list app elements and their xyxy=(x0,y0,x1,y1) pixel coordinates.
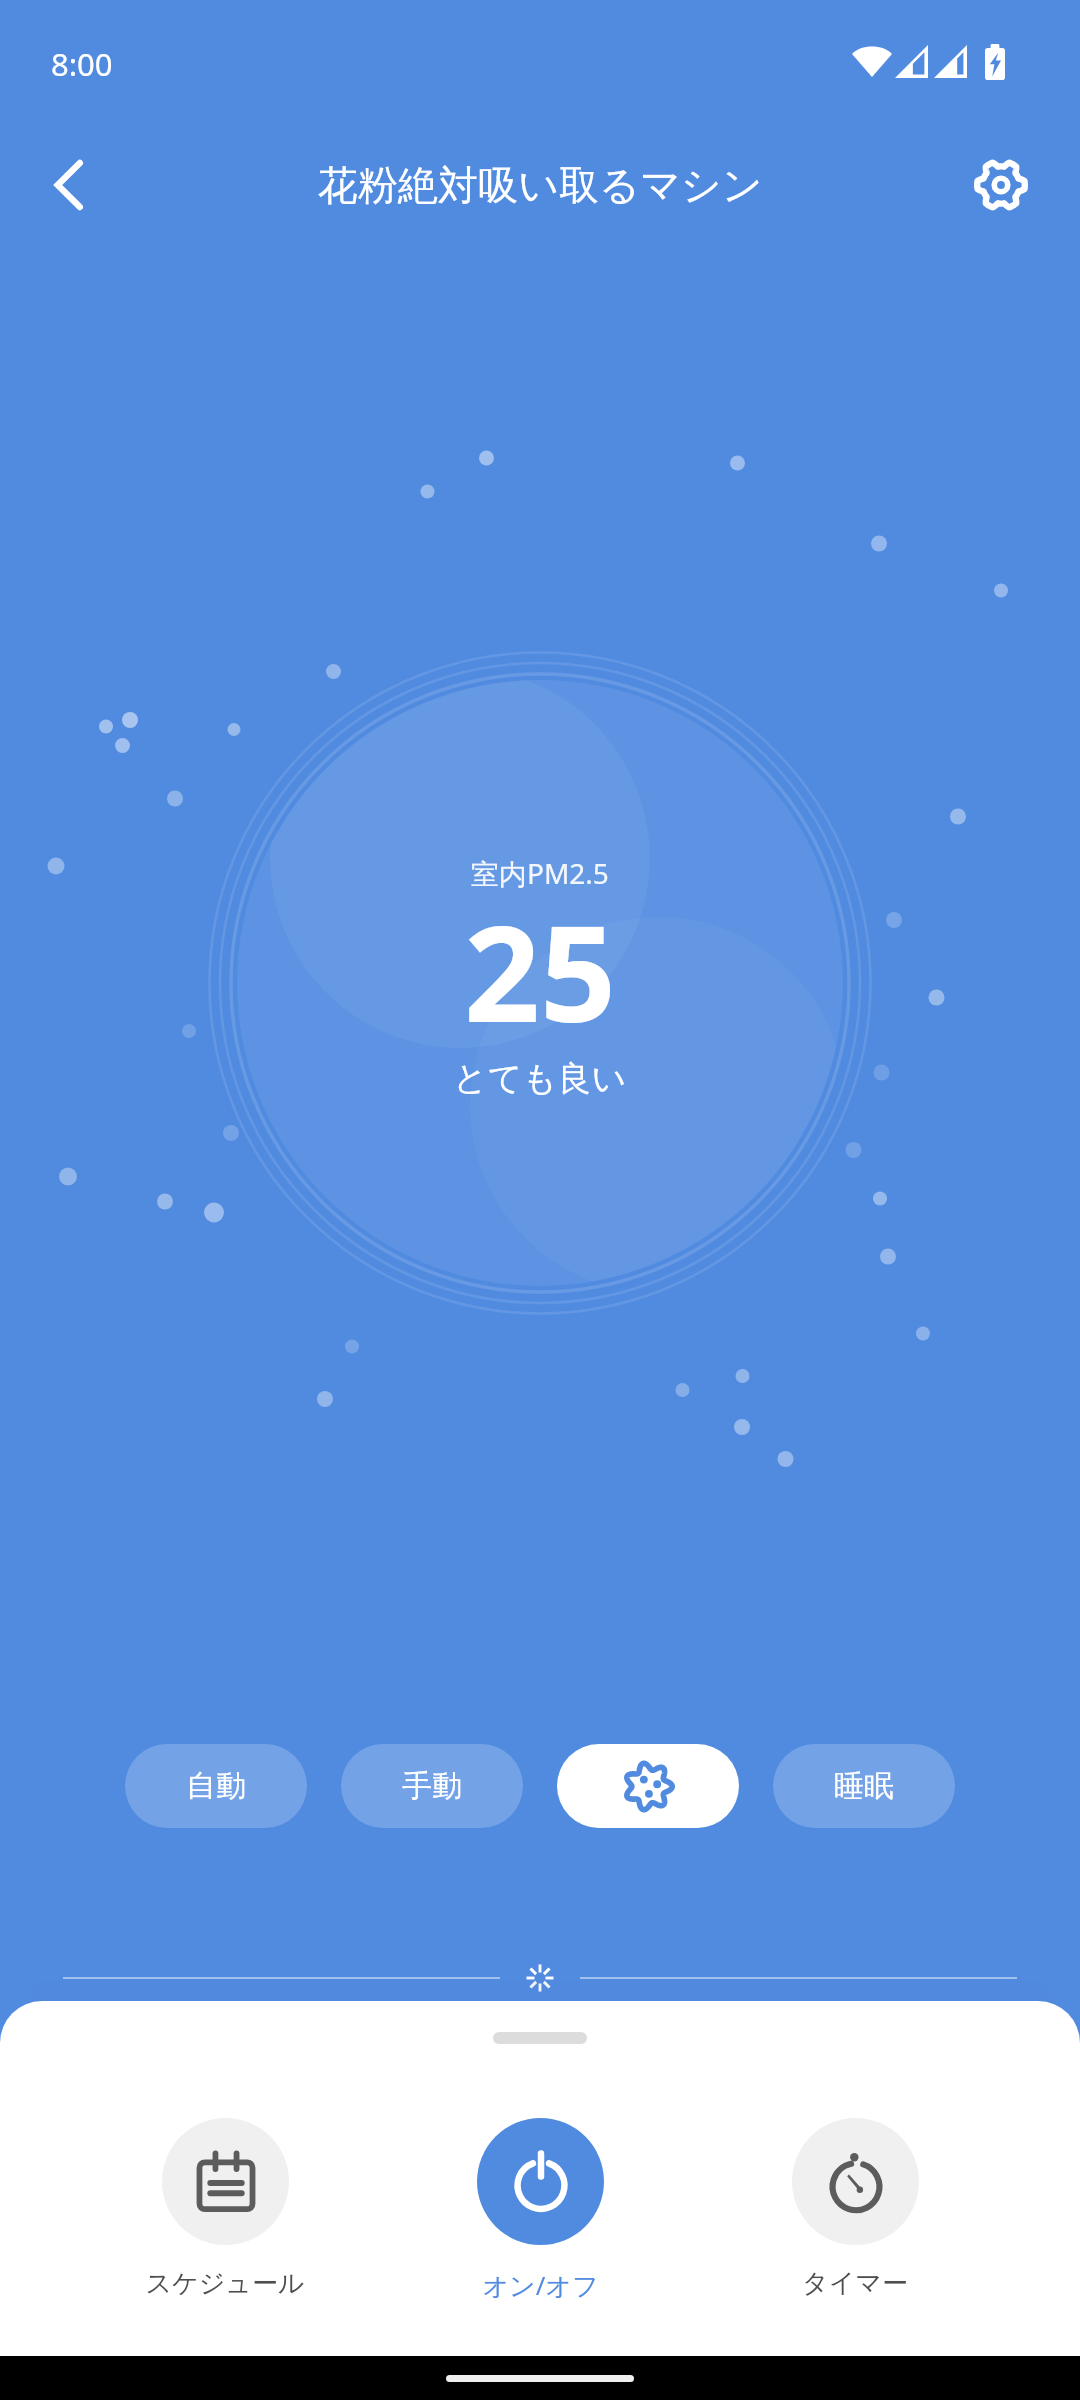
staticText: 8:00 xyxy=(51,43,113,85)
staticText: 花粉絶対吸い取るマシン xyxy=(318,160,763,210)
button[interactable]: 睡眠 xyxy=(773,1744,955,1828)
staticText: 自動 xyxy=(186,1767,246,1805)
staticText: タイマー xyxy=(802,2267,908,2300)
button[interactable]: Back xyxy=(20,137,116,233)
button[interactable]: Pollen mode xyxy=(557,1744,739,1828)
staticText: とても良い xyxy=(453,1057,627,1100)
button[interactable]: スケジュール xyxy=(120,2118,330,2300)
staticText: スケジュール xyxy=(145,2267,305,2300)
staticText: オン/オフ xyxy=(482,2267,599,2303)
staticText: 25 xyxy=(464,880,617,1061)
staticText: 睡眠 xyxy=(834,1767,894,1805)
staticText: 手動 xyxy=(402,1767,462,1805)
button[interactable]: 手動 xyxy=(341,1744,523,1828)
button[interactable]: タイマー xyxy=(750,2118,960,2300)
button[interactable]: オン/オフ xyxy=(435,2118,645,2303)
button[interactable]: Settings xyxy=(953,137,1049,233)
button[interactable]: 自動 xyxy=(125,1744,307,1828)
staticText: 室内PM2.5 xyxy=(471,854,609,892)
